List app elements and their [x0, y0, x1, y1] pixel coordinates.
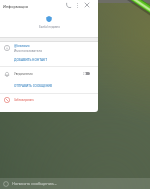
button[interactable]: Написать сообщение... — [0, 178, 150, 189]
button[interactable]: ОТПРАВИТЬ СООБЩЕНИЕ — [0, 81, 98, 90]
button[interactable]: Close — [82, 0, 92, 10]
staticText: Имя пользователя — [14, 49, 43, 53]
staticText: ДОБАВИТЬ КОНТАКТ — [14, 58, 47, 62]
staticText: Написать сообщение... — [12, 181, 57, 186]
button[interactable]: ДОБАВИТЬ КОНТАКТ — [0, 55, 98, 64]
button[interactable]: Call — [63, 0, 73, 10]
button[interactable]: Заблокировать — [0, 94, 98, 105]
button[interactable]: @ivanovo — [0, 42, 98, 54]
staticText: ОТПРАВИТЬ СООБЩЕНИЕ — [14, 84, 53, 88]
staticText: Уведомления — [14, 72, 33, 76]
staticText: Информация — [3, 4, 28, 9]
staticText: Заблокировать — [14, 98, 34, 102]
button[interactable]: More options — [72, 0, 82, 10]
button[interactable]: Notifications toggle — [83, 72, 90, 75]
staticText: @ivanovo — [14, 43, 30, 48]
staticText: Был(а) недавно — [39, 25, 60, 29]
button[interactable]: Уведомления — [0, 68, 98, 79]
